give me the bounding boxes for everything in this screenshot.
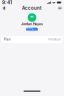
button[interactable]: More options bbox=[57, 5, 62, 11]
staticText: Edit profile bbox=[27, 26, 37, 33]
staticText: Jordan Hayes bbox=[21, 22, 43, 26]
button[interactable]: Plan bbox=[2, 36, 62, 43]
staticText: Account bbox=[22, 5, 42, 11]
button[interactable]: Back bbox=[2, 5, 7, 11]
button[interactable]: Edit profile bbox=[26, 28, 38, 31]
staticText: Premium bbox=[48, 38, 60, 41]
staticText: Plan bbox=[4, 38, 11, 41]
staticText: 9:41 bbox=[2, 0, 12, 5]
